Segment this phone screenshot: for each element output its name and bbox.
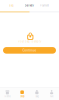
staticText: Home xyxy=(4,95,10,98)
staticText: Your bag is empty xyxy=(18,40,41,43)
button[interactable]: Me xyxy=(44,88,59,100)
button[interactable]: Continue xyxy=(3,47,56,54)
staticText: Shop xyxy=(20,95,24,98)
staticText: Payment xyxy=(40,4,49,7)
button[interactable]: Payment xyxy=(40,1,49,10)
staticText: Bag xyxy=(35,95,38,98)
button[interactable]: Home xyxy=(0,88,15,100)
staticText: Bag xyxy=(9,4,14,7)
button[interactable]: Shop xyxy=(15,88,30,100)
button[interactable]: Bag xyxy=(29,88,44,100)
staticText: Delivery xyxy=(24,4,33,7)
staticText: Continue xyxy=(22,49,36,52)
button[interactable]: Delivery xyxy=(24,1,33,10)
button[interactable]: Bag xyxy=(9,1,14,10)
staticText: Me xyxy=(50,95,53,98)
